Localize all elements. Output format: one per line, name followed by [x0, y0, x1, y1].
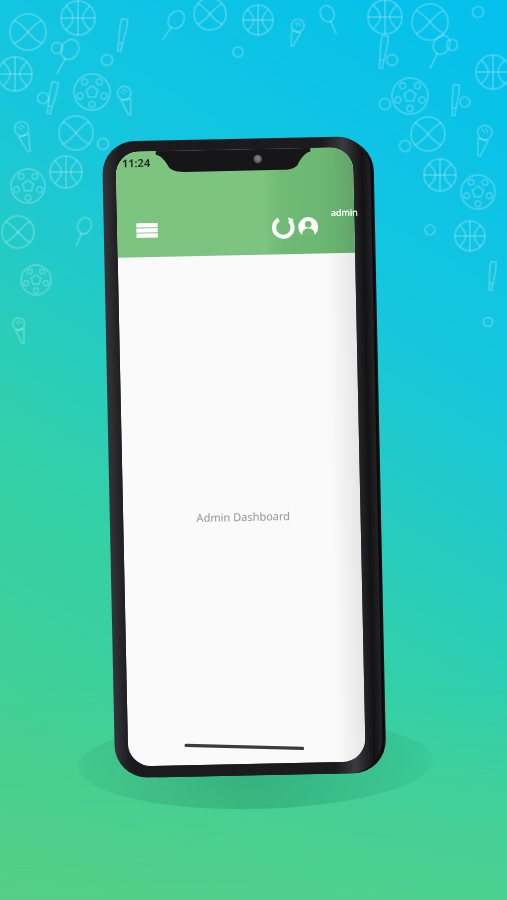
button[interactable]: Open navigation menu: [120, 212, 154, 244]
staticText: 11:24: [122, 155, 151, 170]
button[interactable]: admin: [310, 213, 366, 243]
staticText: Admin Dashboard: [109, 506, 377, 527]
button[interactable]: admin: [331, 205, 358, 218]
button[interactable]: Refresh: [283, 215, 311, 243]
staticText: admin: [331, 205, 358, 218]
